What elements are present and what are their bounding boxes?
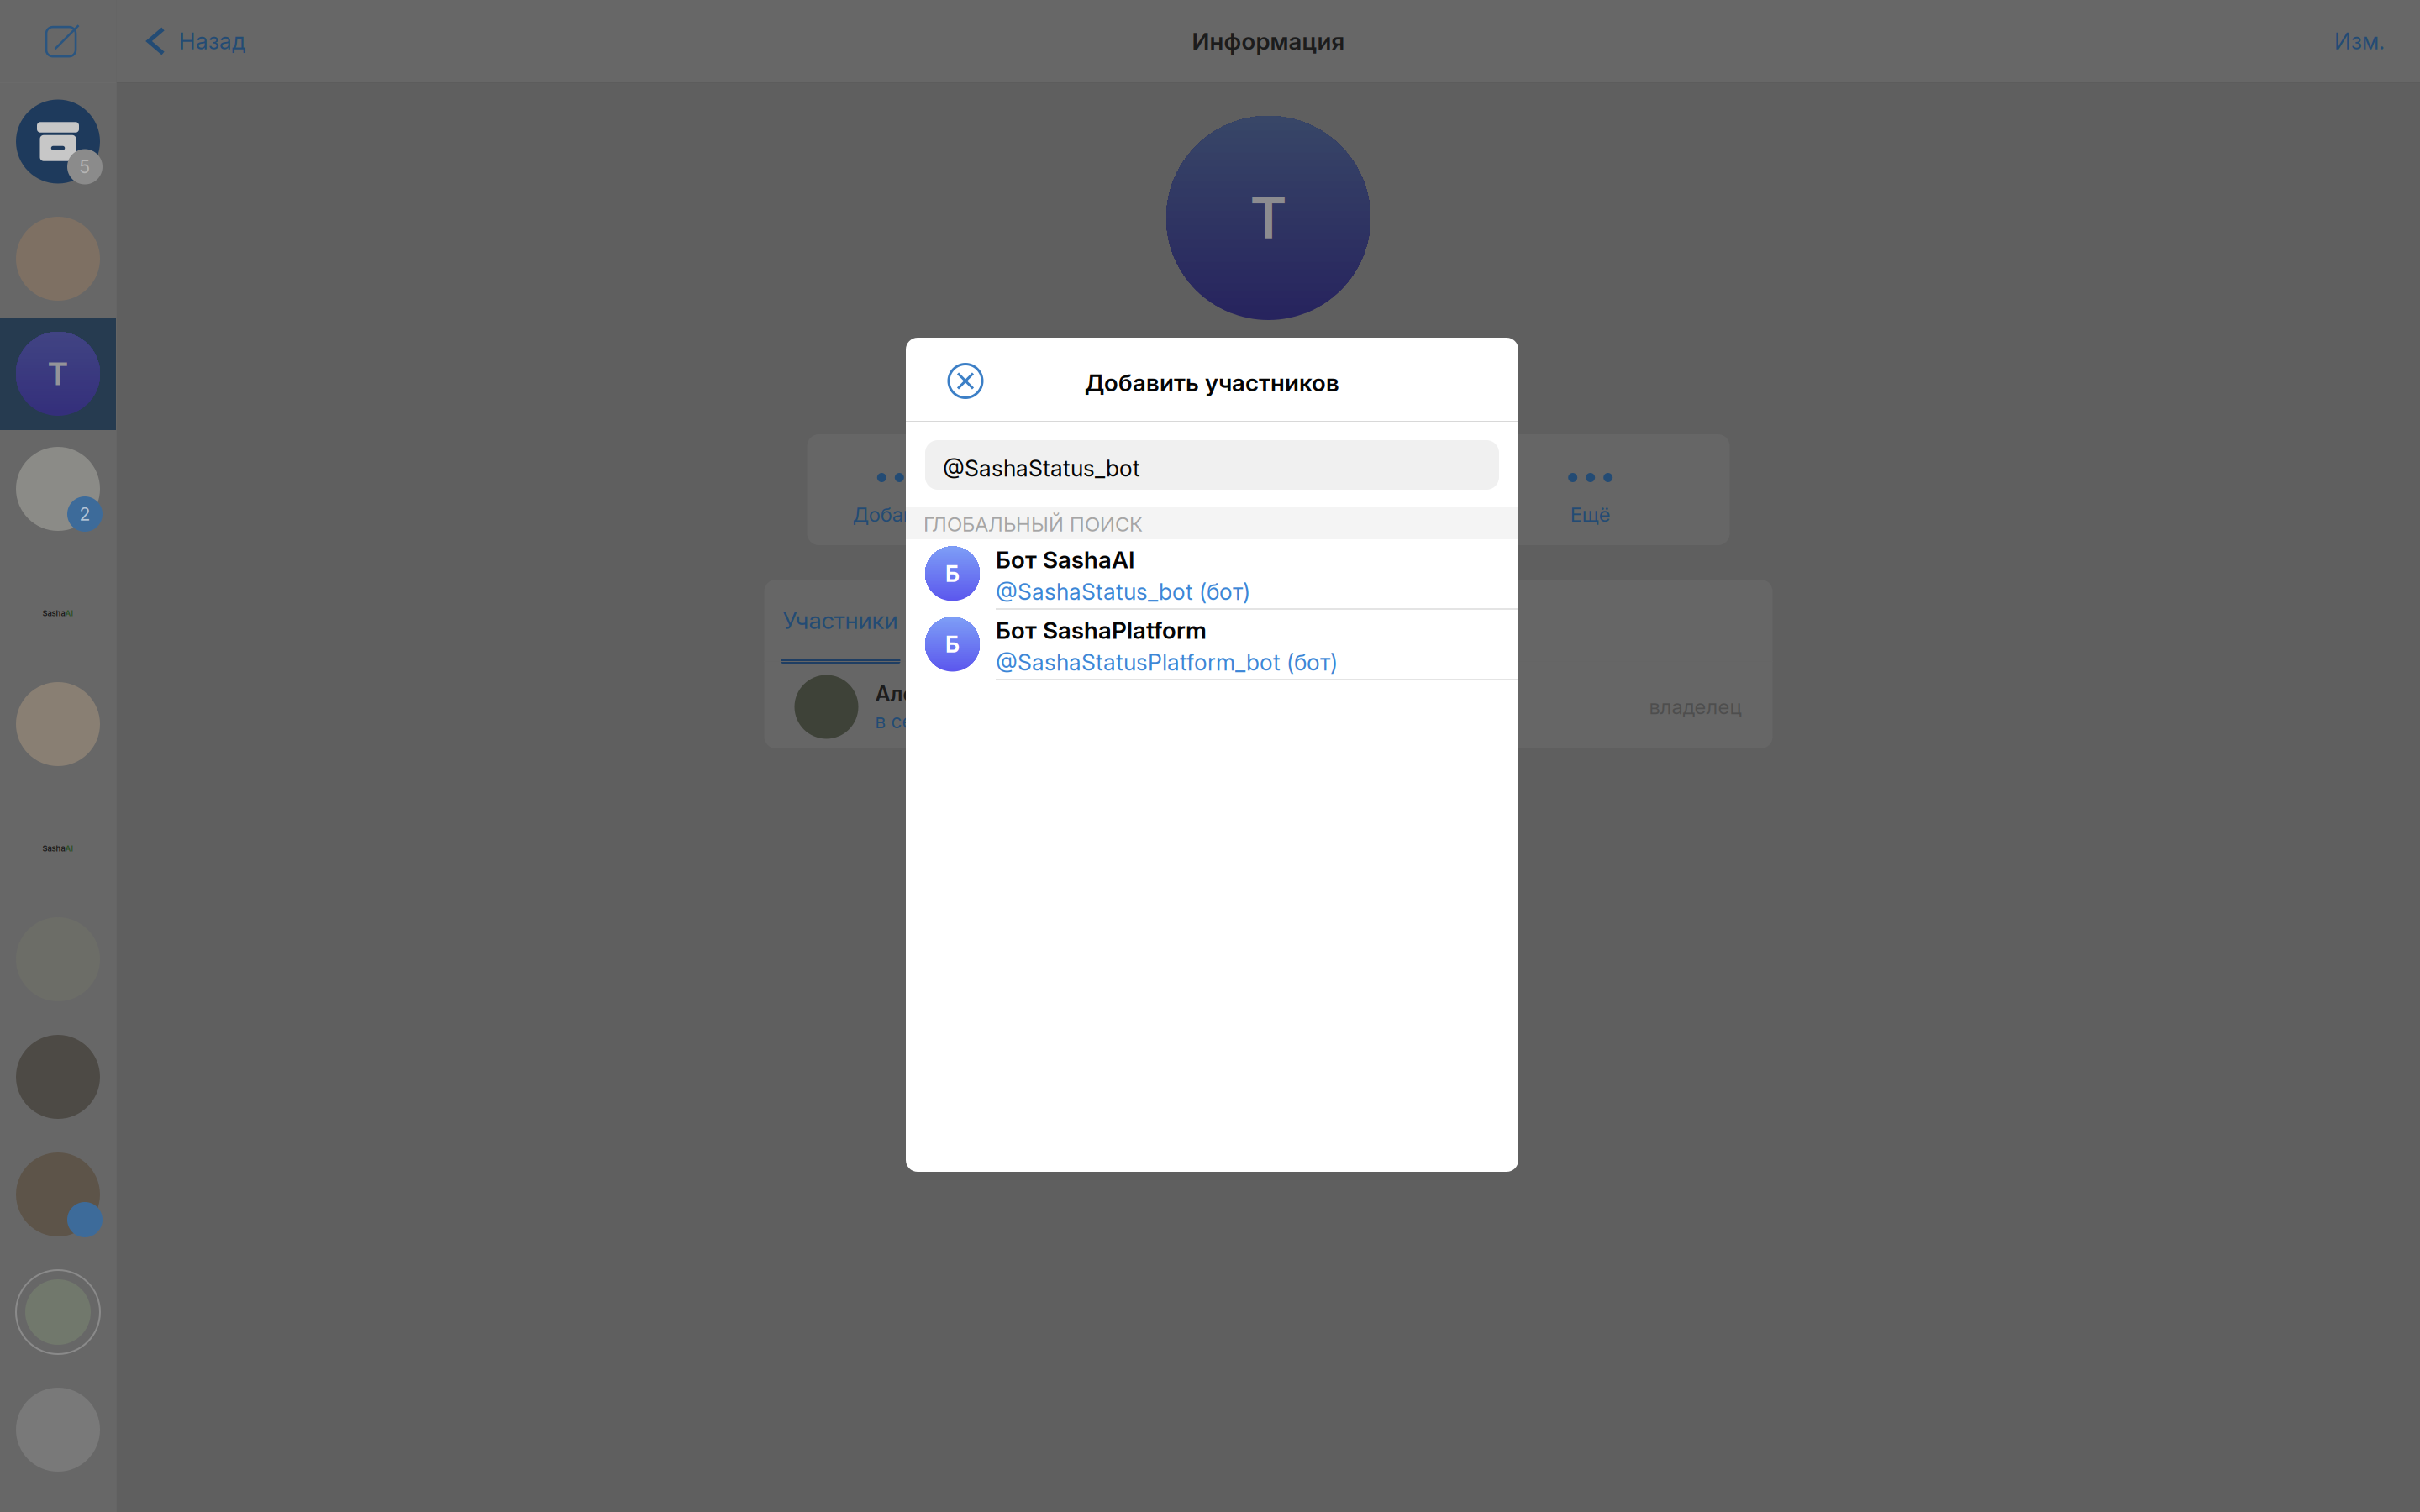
button[interactable]: Чат — [0, 1136, 116, 1253]
staticText: T — [48, 355, 68, 393]
button[interactable]: Чат — [0, 1253, 116, 1371]
staticText: 2 — [79, 503, 90, 525]
staticText: Бот SashaPlatform — [996, 616, 1207, 645]
staticText: @SashaStatus_bot (бот) — [996, 578, 1250, 605]
button[interactable]: Чат — [0, 1018, 116, 1136]
staticText: Ещё — [1570, 502, 1611, 527]
staticText: Поиск — [1387, 502, 1448, 527]
staticText: @SashaStatus_bot — [943, 455, 1140, 482]
button[interactable]: Без звука — [986, 434, 1158, 545]
button[interactable]: Чат — [0, 430, 116, 548]
staticText: Бот SashaAI — [996, 545, 1134, 574]
staticText: T — [1250, 184, 1287, 252]
staticText: Б — [945, 631, 960, 658]
staticText: Добавить участников — [1085, 368, 1339, 397]
staticText: 5 — [79, 156, 90, 178]
button[interactable]: Чат — [0, 200, 116, 318]
button[interactable]: Чат T — [0, 318, 116, 430]
button[interactable]: Б — [906, 539, 1518, 610]
button[interactable]: Чат — [0, 665, 116, 783]
staticText: Без звука — [1025, 502, 1119, 527]
button[interactable]: Б — [906, 610, 1518, 680]
staticText: Звонок — [1210, 502, 1280, 527]
button[interactable]: Поиск — [1331, 434, 1504, 545]
button[interactable]: Ещё — [1504, 434, 1677, 545]
staticText: в сети — [875, 710, 933, 733]
staticText: Sasha — [42, 844, 65, 853]
button[interactable]: Архив — [0, 83, 116, 200]
button[interactable]: Закрыть — [938, 352, 993, 407]
staticText: Алексей — [875, 681, 964, 707]
button[interactable]: Написать — [20, 3, 96, 79]
staticText: Изм. — [2334, 28, 2385, 55]
staticText: AI — [65, 844, 74, 853]
button[interactable]: Изм. — [2314, 10, 2420, 72]
staticText: Добавить — [853, 502, 946, 527]
staticText: владелец — [1649, 695, 1741, 719]
staticText: Информация — [1192, 27, 1345, 55]
button[interactable]: Добавить — [813, 434, 986, 545]
staticText: ГЛОБАЛЬНЫЙ ПОИСК — [923, 512, 1143, 536]
button[interactable]: Назад — [117, 10, 266, 72]
staticText: Sasha — [42, 608, 65, 618]
button[interactable]: Звонок — [1158, 434, 1331, 545]
staticText: Назад — [179, 28, 245, 55]
staticText: Б — [945, 560, 960, 587]
staticText: AI — [65, 608, 74, 618]
staticText: Участники — [783, 606, 898, 635]
staticText: @SashaStatusPlatform_bot (бот) — [996, 649, 1338, 676]
button[interactable]: Чат — [0, 1371, 116, 1488]
